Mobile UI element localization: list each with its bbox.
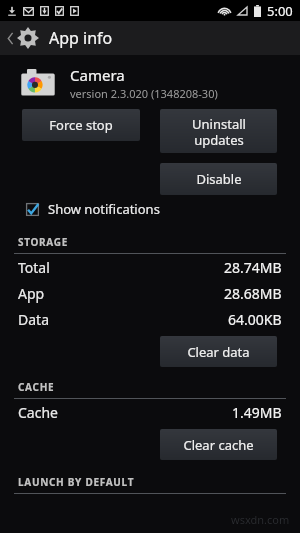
button[interactable]: Clear cache	[160, 429, 277, 460]
button[interactable]: Total	[0, 254, 300, 280]
button[interactable]: Clear data	[160, 336, 277, 367]
button[interactable]: Show notifications	[0, 198, 300, 220]
button[interactable]: Disable	[160, 163, 277, 195]
staticText: wsxdn.com	[231, 512, 290, 527]
staticText: version 2.3.020 (1348208-30)	[70, 86, 218, 101]
staticText: CACHE	[18, 380, 55, 394]
staticText: LAUNCH BY DEFAULT	[18, 475, 135, 489]
staticText: 64.00KB	[228, 310, 282, 329]
staticText: Disable	[196, 170, 242, 188]
button[interactable]: Data	[0, 306, 300, 332]
staticText: Cache	[18, 403, 58, 422]
staticText: App info	[49, 27, 113, 49]
staticText: 1.49MB	[232, 403, 282, 422]
button[interactable]: App info, navigate up	[0, 21, 300, 55]
staticText: Show notifications	[48, 200, 160, 218]
staticText: Camera	[70, 65, 125, 85]
button[interactable]: Force stop	[22, 109, 140, 141]
staticText: Total	[18, 258, 50, 277]
button[interactable]: App	[0, 280, 300, 306]
staticText: Clear data	[187, 343, 250, 361]
button[interactable]: Cache	[0, 399, 300, 425]
staticText: Uninstall updates	[192, 115, 246, 148]
staticText: 28.68MB	[224, 284, 282, 303]
staticText: STORAGE	[18, 235, 69, 249]
staticText: Force stop	[49, 116, 113, 134]
staticText: Clear cache	[183, 436, 254, 454]
staticText: 28.74MB	[224, 258, 282, 277]
staticText: App	[18, 284, 45, 303]
staticText: 5:00	[267, 2, 293, 20]
button[interactable]: Uninstall updates	[160, 109, 277, 153]
staticText: Data	[18, 310, 49, 329]
